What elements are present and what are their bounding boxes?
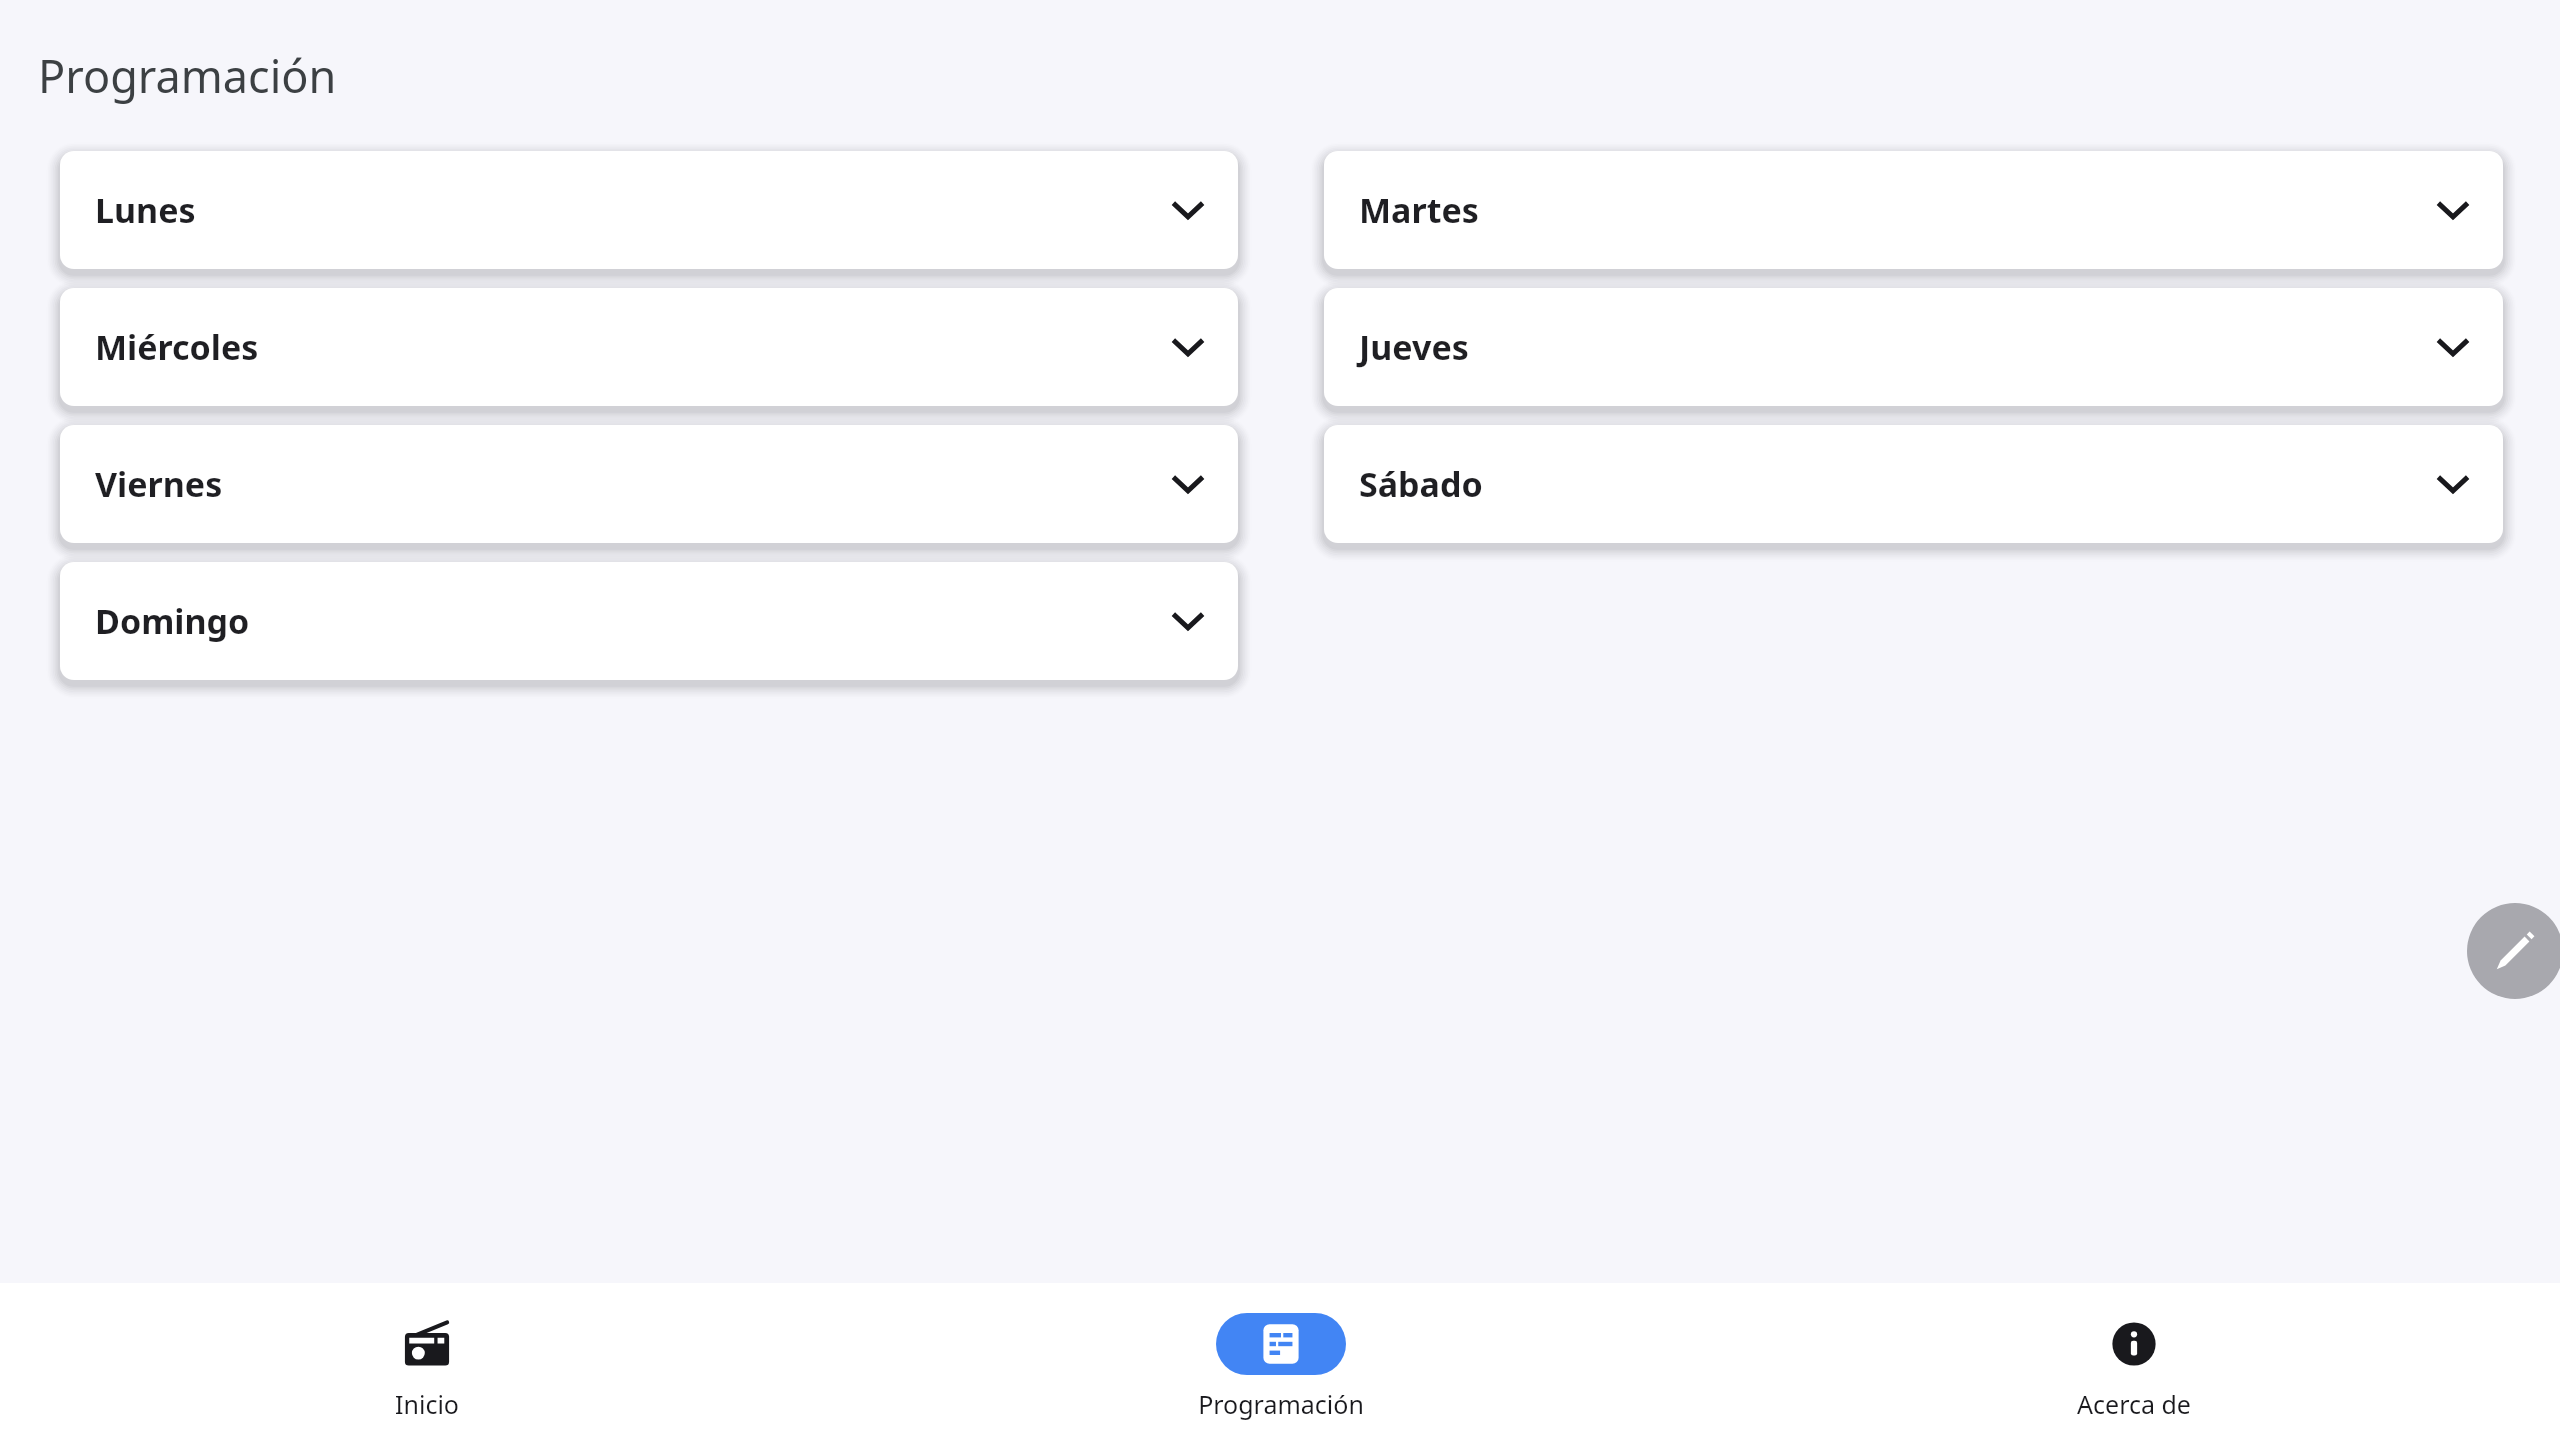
staticText: Jueves xyxy=(1359,324,1469,370)
button[interactable]: Jueves xyxy=(1324,288,2503,406)
staticText: Inicio xyxy=(395,1387,459,1421)
staticText: Martes xyxy=(1359,187,1479,233)
other: Inicio xyxy=(403,1313,451,1375)
staticText: Miércoles xyxy=(95,324,259,370)
button[interactable]: Programación xyxy=(854,1283,1707,1441)
button[interactable]: Sábado xyxy=(1324,425,2503,543)
button[interactable]: Editar xyxy=(2467,903,2560,999)
button[interactable]: Lunes xyxy=(60,151,1238,269)
other: Acerca de xyxy=(2111,1313,2157,1375)
staticText: Domingo xyxy=(95,598,250,644)
button[interactable]: Inicio xyxy=(0,1283,854,1441)
staticText: Acerca de xyxy=(2077,1387,2191,1421)
staticText: Sábado xyxy=(1359,461,1483,507)
staticText: Programación xyxy=(38,45,337,106)
other: Programación xyxy=(1216,1313,1346,1375)
staticText: Programación xyxy=(1198,1387,1364,1421)
button[interactable]: Miércoles xyxy=(60,288,1238,406)
button[interactable]: Martes xyxy=(1324,151,2503,269)
staticText: Lunes xyxy=(95,187,196,233)
button[interactable]: Viernes xyxy=(60,425,1238,543)
button[interactable]: Domingo xyxy=(60,562,1238,680)
button[interactable]: Acerca de xyxy=(1707,1283,2560,1441)
staticText: Viernes xyxy=(95,461,223,507)
